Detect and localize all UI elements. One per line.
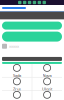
staticText: Sada: [13, 73, 21, 78]
button[interactable]: Cas: [2, 91, 32, 100]
button[interactable]: Zrus: [2, 77, 32, 90]
button[interactable]: [2, 32, 62, 42]
staticText: Zrus: [13, 86, 21, 92]
button[interactable]: [2, 22, 62, 30]
button[interactable]: Sada: [2, 64, 32, 77]
button[interactable]: Nova: [32, 64, 62, 77]
staticText: Ulozit: [42, 86, 52, 92]
button[interactable]: Ulozit: [32, 77, 62, 90]
button[interactable]: Dalsi: [32, 91, 62, 100]
staticText: Nova: [43, 73, 52, 78]
staticText: xxxxx: [9, 44, 19, 49]
